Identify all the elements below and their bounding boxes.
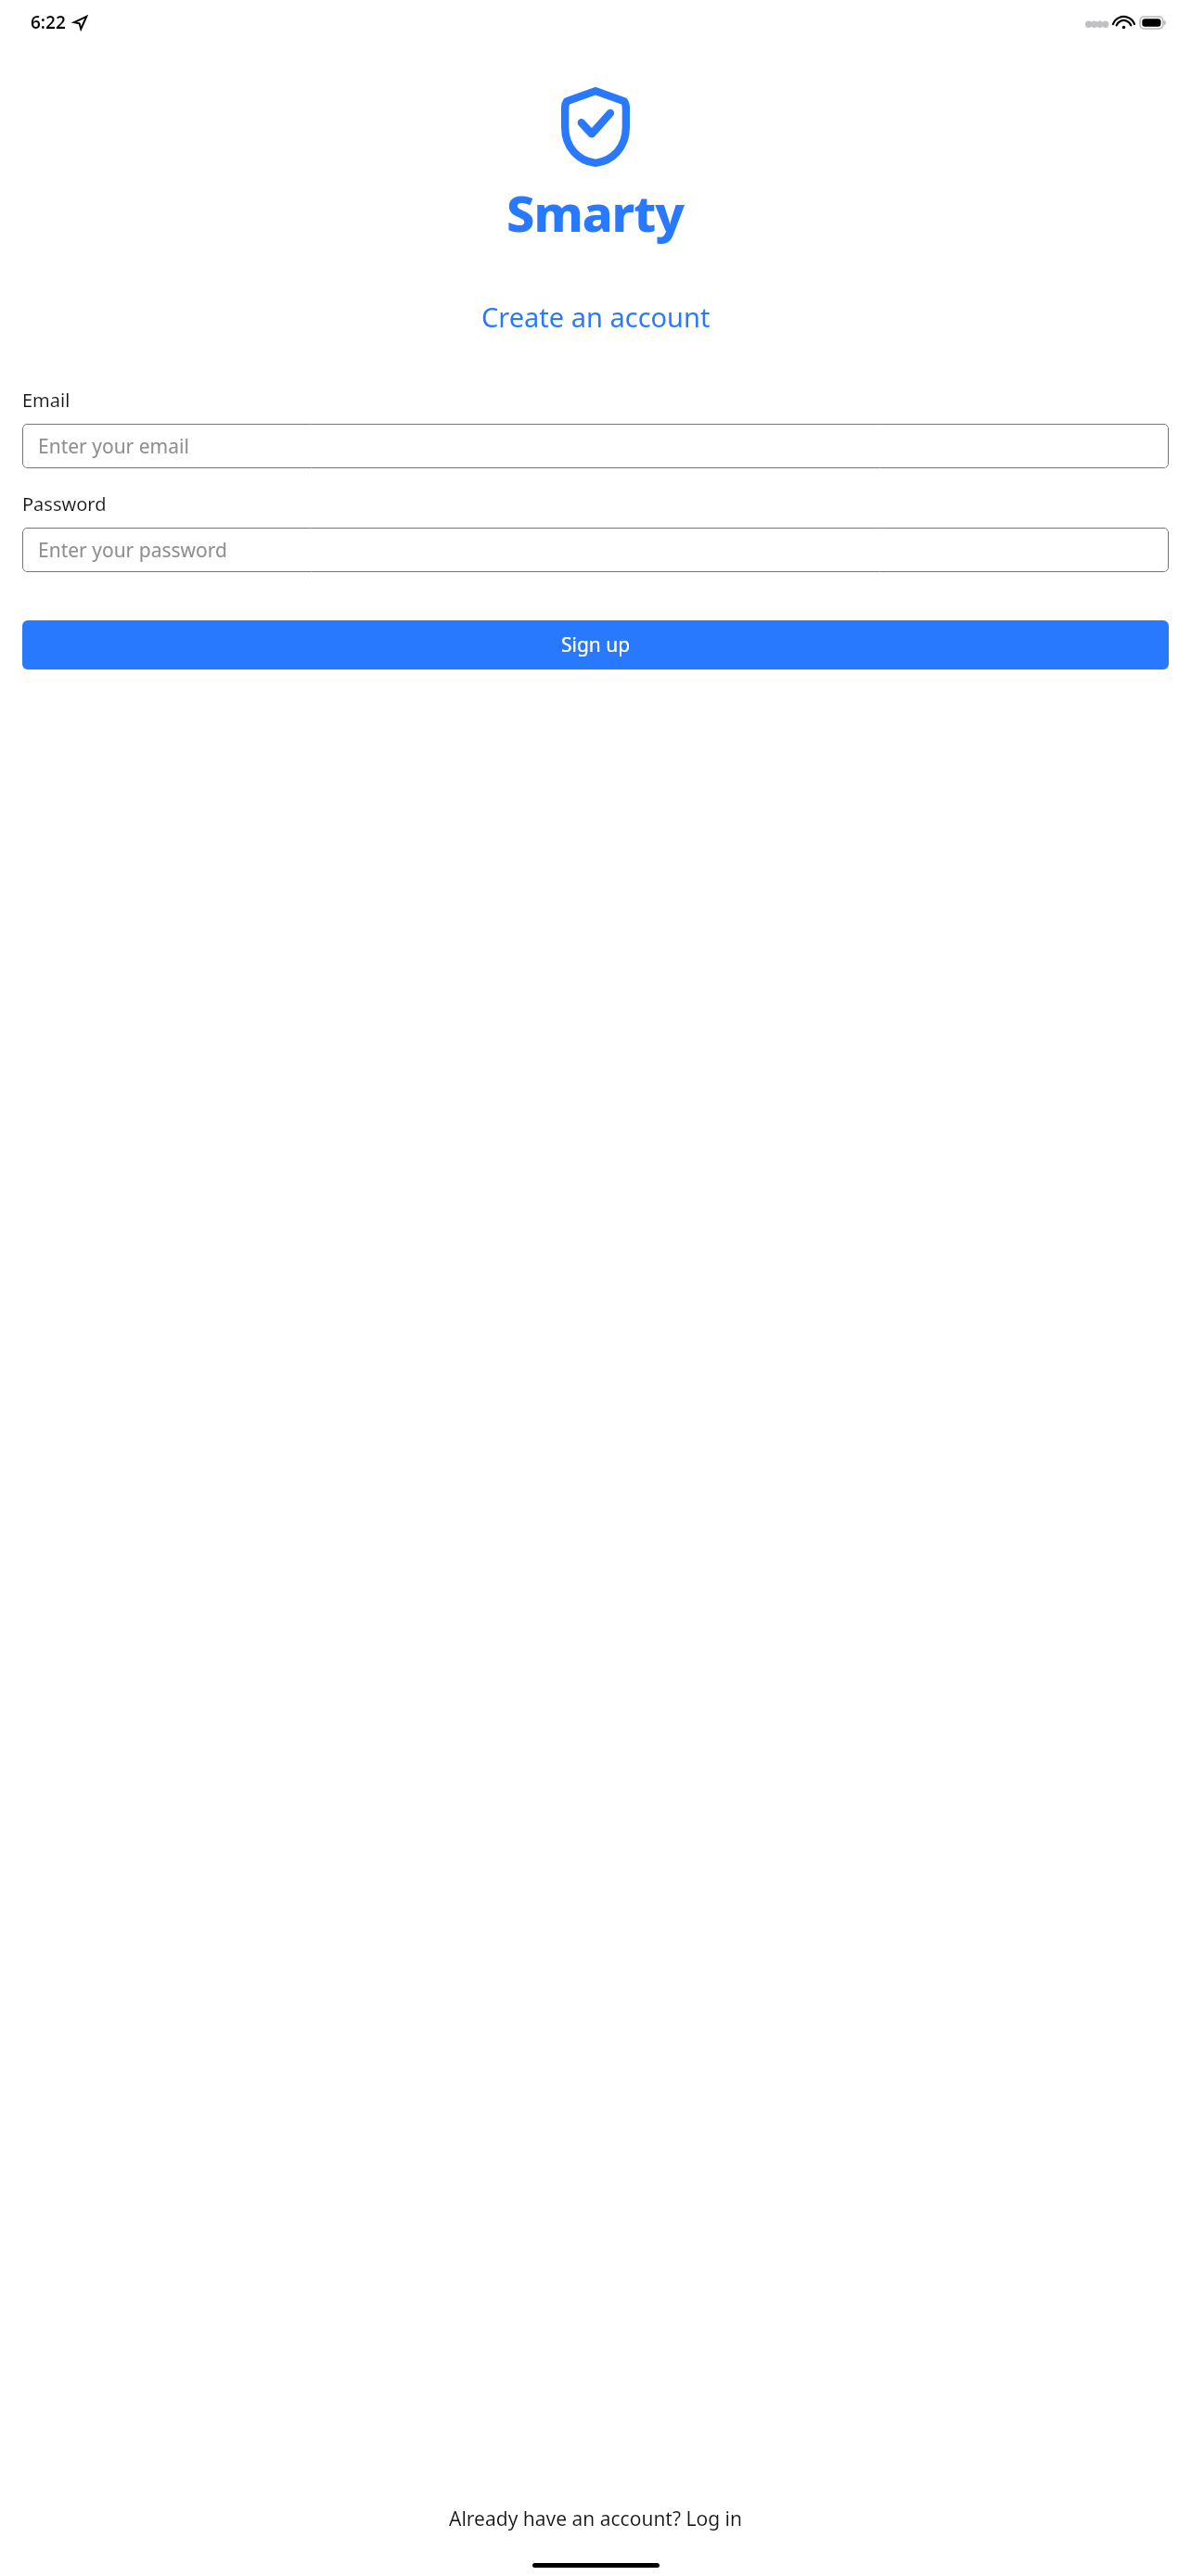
staticText: Enter your email <box>38 433 189 460</box>
staticText: Sign up <box>561 631 631 658</box>
button[interactable]: Enter your email <box>22 424 1169 468</box>
button[interactable]: Enter your password <box>22 528 1169 572</box>
staticText: Password <box>22 491 107 516</box>
button[interactable]: Sign up <box>22 620 1169 670</box>
staticText: 6:22 <box>31 10 66 34</box>
staticText: Smarty <box>506 178 685 247</box>
staticText: Email <box>22 388 70 413</box>
staticText: Create an account <box>481 299 711 335</box>
button[interactable]: Already have an account? Log in <box>0 2506 1191 2532</box>
staticText: Already have an account? Log in <box>449 2506 742 2532</box>
staticText: Enter your password <box>38 537 227 564</box>
